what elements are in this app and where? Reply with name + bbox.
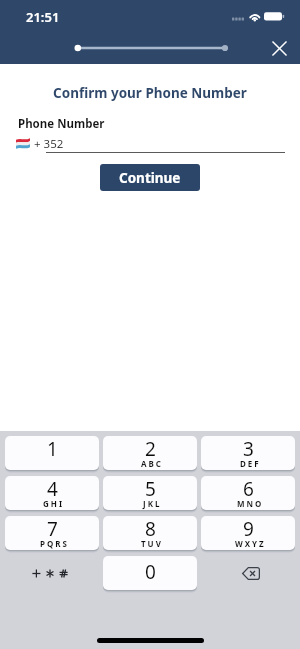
staticText: 8 bbox=[145, 516, 156, 542]
button[interactable]: 1 bbox=[5, 436, 99, 470]
staticText: + 352 bbox=[34, 136, 64, 152]
staticText: 1 bbox=[47, 436, 58, 462]
button[interactable]: 6 bbox=[201, 476, 295, 510]
staticText: 7 bbox=[47, 516, 58, 542]
staticText: Continue bbox=[119, 169, 181, 187]
staticText: 3 bbox=[243, 436, 254, 462]
staticText: 9 bbox=[243, 516, 254, 542]
staticText: 0 bbox=[145, 559, 156, 585]
button[interactable]: Symbols bbox=[5, 556, 99, 590]
button[interactable]: Backspace bbox=[201, 556, 295, 590]
button[interactable]: 0 bbox=[103, 556, 197, 590]
staticText: JKL bbox=[143, 498, 162, 509]
button[interactable]: 8 bbox=[103, 516, 197, 550]
staticText: DEF bbox=[240, 458, 261, 469]
staticText: TUV bbox=[141, 538, 163, 549]
staticText: PQRS bbox=[40, 538, 69, 549]
staticText: 2 bbox=[145, 436, 156, 462]
button[interactable]: 3 bbox=[201, 436, 295, 470]
staticText: 21:51 bbox=[26, 8, 60, 26]
button[interactable]: 5 bbox=[103, 476, 197, 510]
staticText: Confirm your Phone Number bbox=[0, 84, 300, 102]
button[interactable]: Continue bbox=[100, 164, 200, 191]
staticText: MNO bbox=[237, 498, 264, 509]
staticText: GHI bbox=[43, 498, 65, 509]
staticText: Phone Number bbox=[18, 116, 105, 132]
staticText: 4 bbox=[47, 476, 58, 502]
staticText: WXYZ bbox=[235, 538, 266, 549]
button[interactable]: Close bbox=[265, 34, 293, 62]
staticText: 6 bbox=[243, 476, 254, 502]
button[interactable]: 9 bbox=[201, 516, 295, 550]
button[interactable]: 7 bbox=[5, 516, 99, 550]
button[interactable]: 2 bbox=[103, 436, 197, 470]
staticText: ABC bbox=[141, 458, 163, 469]
staticText: 5 bbox=[145, 476, 156, 502]
button[interactable]: 4 bbox=[5, 476, 99, 510]
